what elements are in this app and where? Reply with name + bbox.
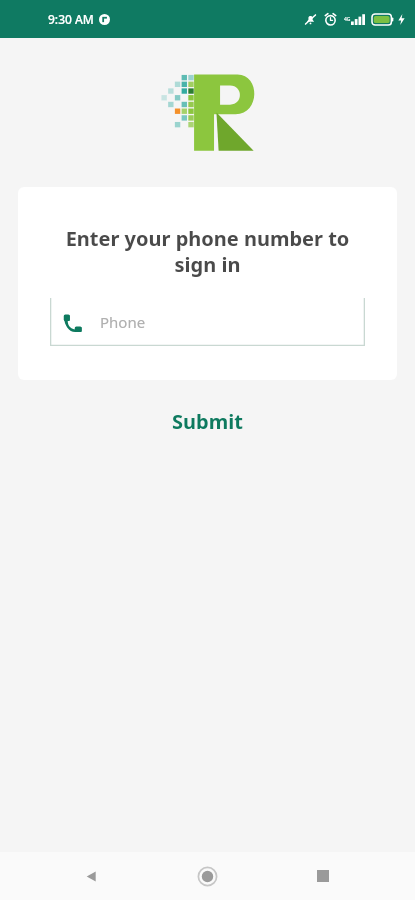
button[interactable]: Home — [183, 852, 231, 900]
staticText: Submit — [172, 408, 243, 435]
staticText: Enter your phone number to sign in — [46, 225, 369, 278]
staticText: Phone — [100, 312, 146, 332]
button[interactable]: Recent apps — [299, 852, 347, 900]
staticText: 4G — [344, 16, 351, 23]
button[interactable]: Back — [67, 852, 115, 900]
staticText: 9:30 AM — [48, 11, 94, 27]
button[interactable]: Submit — [154, 400, 261, 443]
button[interactable]: Phone — [50, 298, 365, 346]
